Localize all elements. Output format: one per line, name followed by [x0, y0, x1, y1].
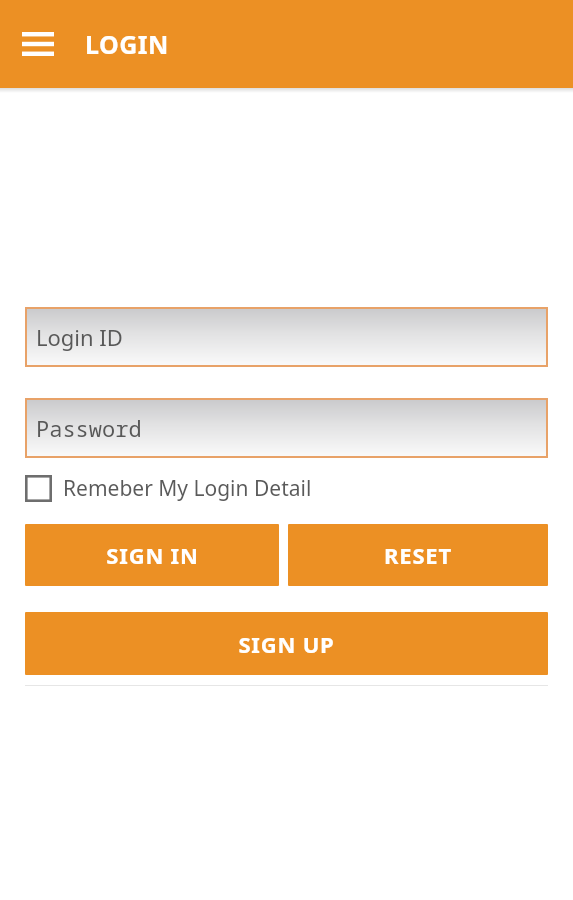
button[interactable]: Password: [25, 398, 548, 458]
staticText: SIGN IN: [106, 540, 199, 570]
staticText: Password: [36, 413, 142, 443]
button[interactable]: Remeber My Login Detail: [25, 465, 312, 511]
button[interactable]: RESET: [288, 524, 548, 586]
button[interactable]: Login ID: [25, 307, 548, 367]
staticText: LOGIN: [85, 27, 169, 61]
staticText: RESET: [384, 540, 452, 570]
staticText: SIGN UP: [238, 629, 335, 659]
button[interactable]: Open navigation menu: [14, 20, 62, 68]
staticText: Remeber My Login Detail: [63, 474, 312, 503]
button[interactable]: SIGN UP: [25, 612, 548, 675]
button[interactable]: SIGN IN: [25, 524, 279, 586]
staticText: Login ID: [36, 322, 123, 352]
